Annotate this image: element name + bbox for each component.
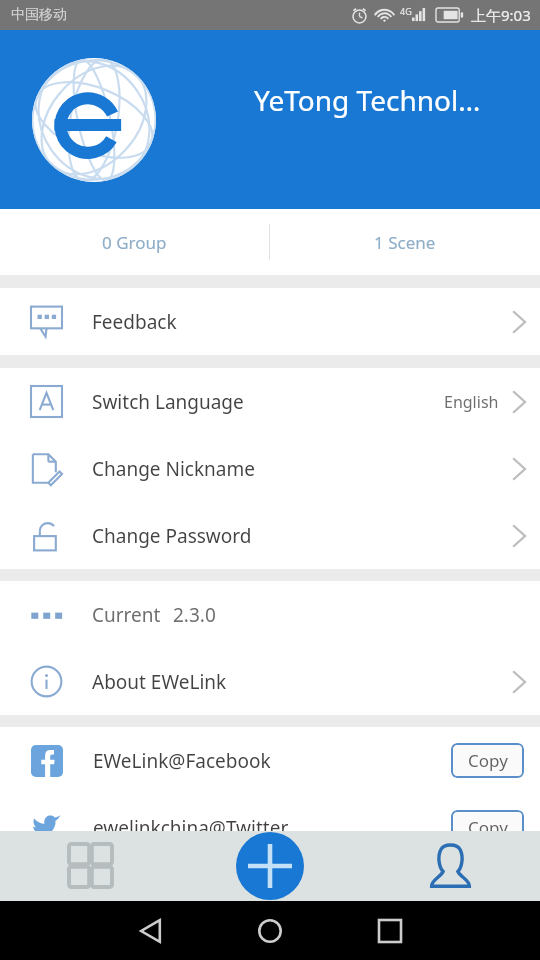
button[interactable]: Current xyxy=(0,581,540,648)
staticText: 4G xyxy=(400,5,412,17)
staticText: English xyxy=(444,391,499,413)
button[interactable]: Add xyxy=(236,832,304,900)
button[interactable]: Devices xyxy=(0,831,180,901)
staticText: Feedback xyxy=(92,309,177,335)
button[interactable]: 0 Group xyxy=(0,209,269,275)
staticText: Copy xyxy=(468,816,508,839)
staticText: Change Nickname xyxy=(92,456,255,482)
staticText: 2.3.0 xyxy=(173,602,216,628)
staticText: Change Password xyxy=(92,523,252,549)
button[interactable]: Recents xyxy=(367,908,413,954)
staticText: ewelinkchina@Twitter xyxy=(93,815,289,841)
staticText: Copy xyxy=(468,749,508,772)
button[interactable]: Switch Language xyxy=(0,368,540,435)
button[interactable]: Copy xyxy=(451,743,524,778)
staticText: 上午9:03 xyxy=(471,5,531,25)
button[interactable]: About EWeLink xyxy=(0,648,540,715)
button[interactable]: Copy xyxy=(451,810,524,845)
button[interactable]: 1 Scene xyxy=(270,209,540,275)
button[interactable]: ewelinkchina@Twitter xyxy=(0,794,540,861)
button[interactable]: Feedback xyxy=(0,288,540,355)
staticText: 中国移动 xyxy=(11,6,67,24)
button[interactable]: Profile xyxy=(360,831,540,901)
staticText: EWeLink@Facebook xyxy=(93,748,271,774)
staticText: Switch Language xyxy=(92,389,244,415)
staticText: YeTong Technol… xyxy=(254,81,481,119)
button[interactable]: Change Nickname xyxy=(0,435,540,502)
staticText: About EWeLink xyxy=(92,669,227,695)
staticText: 0 Group xyxy=(102,231,167,254)
button[interactable]: Back xyxy=(127,908,173,954)
staticText: 1 Scene xyxy=(374,231,436,254)
button[interactable]: EWeLink@Facebook xyxy=(0,727,540,794)
button[interactable]: Change Password xyxy=(0,502,540,569)
staticText: Current xyxy=(92,602,161,628)
button[interactable]: Home xyxy=(247,908,293,954)
